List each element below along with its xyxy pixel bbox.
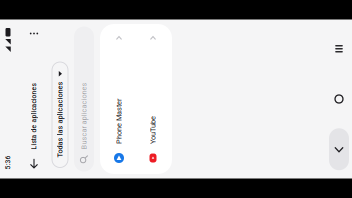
- staticText: Phone Master: [131, 38, 176, 46]
- button[interactable]: Phone Master: [101, 25, 251, 59]
- button[interactable]: YouTube: [101, 59, 251, 93]
